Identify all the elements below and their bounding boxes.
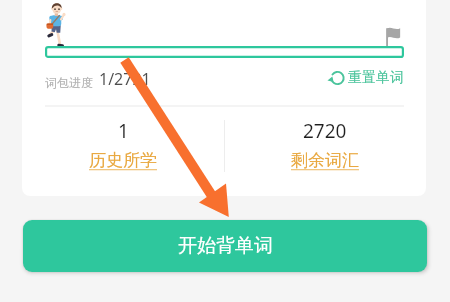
staticText: 重置单词 <box>348 69 404 87</box>
other: Reset words <box>328 70 345 87</box>
staticText: 2720 <box>303 118 347 144</box>
staticText: 1/2721 <box>99 68 151 90</box>
other: Flag <box>384 27 401 47</box>
other: Learning progress mascot <box>44 0 69 48</box>
staticText: 历史所学 <box>89 150 157 171</box>
button[interactable]: 开始背单词 <box>23 220 427 272</box>
button[interactable]: 2720 <box>224 112 426 171</box>
button[interactable]: Reset words <box>328 69 404 87</box>
staticText: 剩余词汇 <box>291 150 359 171</box>
staticText: 1 <box>118 118 129 144</box>
staticText: 词包进度 <box>45 75 93 90</box>
button[interactable]: 1 <box>22 112 224 171</box>
staticText: 开始背单词 <box>178 234 273 258</box>
